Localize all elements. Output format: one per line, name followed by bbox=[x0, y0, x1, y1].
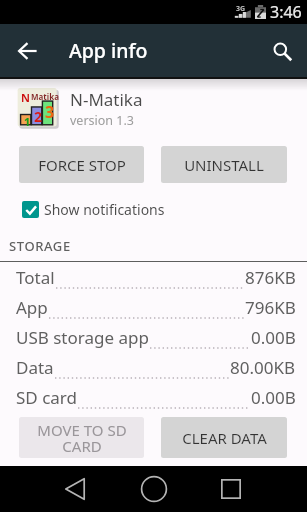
staticText: 796KB bbox=[245, 296, 296, 319]
staticText: FORCE STOP bbox=[38, 155, 126, 175]
button[interactable]: CLEAR DATA bbox=[161, 417, 287, 458]
staticText: 0.00B bbox=[251, 386, 296, 409]
staticText: Show notifications bbox=[44, 200, 165, 219]
staticText: SD card bbox=[16, 386, 77, 409]
staticText: UNINSTALL bbox=[184, 155, 264, 175]
staticText: 0.00B bbox=[251, 326, 296, 349]
staticText: Total bbox=[16, 266, 55, 289]
staticText: 3:46 bbox=[270, 1, 302, 23]
staticText: STORAGE bbox=[9, 237, 71, 255]
staticText: N-Matika bbox=[70, 88, 143, 111]
button[interactable]: SD card bbox=[0, 382, 307, 412]
staticText: Data bbox=[16, 356, 54, 379]
button[interactable]: Home bbox=[130, 466, 178, 512]
staticText: version 1.3 bbox=[70, 112, 134, 129]
staticText: 3G bbox=[236, 4, 246, 14]
staticText: 2 bbox=[34, 107, 43, 126]
staticText: 876KB bbox=[245, 266, 296, 289]
button[interactable]: UNINSTALL bbox=[161, 146, 287, 183]
staticText: App info bbox=[69, 37, 148, 64]
button[interactable]: Navigate up bbox=[7, 31, 47, 71]
staticText: USB storage app bbox=[16, 326, 149, 349]
button[interactable]: Recent apps bbox=[207, 466, 255, 512]
button[interactable]: USB storage app bbox=[0, 322, 307, 352]
staticText: MOVE TO SD CARD bbox=[37, 420, 127, 456]
button[interactable]: MOVE TO SD CARD bbox=[19, 417, 144, 458]
staticText: 80.00KB bbox=[230, 356, 296, 379]
staticText: N bbox=[21, 90, 30, 105]
button[interactable]: Data bbox=[0, 352, 307, 382]
staticText: 1 bbox=[24, 114, 31, 129]
staticText: App bbox=[16, 296, 48, 319]
button[interactable]: Back bbox=[51, 466, 99, 512]
button[interactable]: Search bbox=[262, 31, 302, 71]
button[interactable]: Show notifications bbox=[22, 199, 307, 219]
button[interactable]: App bbox=[0, 292, 307, 322]
button[interactable]: FORCE STOP bbox=[19, 146, 144, 183]
staticText: 3 bbox=[45, 101, 55, 123]
staticText: Matika bbox=[31, 91, 59, 102]
button[interactable]: Total bbox=[0, 262, 307, 292]
staticText: CLEAR DATA bbox=[182, 428, 267, 448]
